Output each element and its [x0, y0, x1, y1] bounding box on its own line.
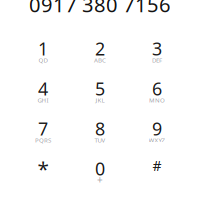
- staticText: QD: [38, 56, 47, 64]
- staticText: 3: [152, 36, 162, 61]
- staticText: PQRS: [35, 136, 51, 144]
- staticText: MNO: [149, 96, 165, 104]
- button[interactable]: 8: [71, 112, 128, 152]
- button[interactable]: 1: [14, 32, 71, 72]
- button[interactable]: 6: [128, 72, 185, 112]
- staticText: WXYZ: [148, 136, 165, 144]
- staticText: 5: [95, 76, 105, 101]
- staticText: ABC: [94, 56, 106, 64]
- staticText: +: [97, 173, 103, 186]
- button[interactable]: 7: [14, 112, 71, 152]
- staticText: 4: [38, 76, 48, 101]
- staticText: 2: [95, 36, 105, 61]
- staticText: DEF: [152, 56, 162, 64]
- button[interactable]: 9: [128, 112, 185, 152]
- staticText: #: [152, 156, 161, 175]
- staticText: 9: [152, 116, 162, 141]
- staticText: 8: [95, 116, 105, 141]
- staticText: 0917 380 7156: [29, 0, 171, 18]
- staticText: JKL: [95, 96, 104, 104]
- button[interactable]: 4: [14, 72, 71, 112]
- staticText: 1: [38, 36, 48, 61]
- staticText: 7: [38, 116, 48, 141]
- staticText: TUV: [94, 136, 105, 144]
- button[interactable]: 2: [71, 32, 128, 72]
- staticText: GHI: [37, 96, 48, 104]
- button[interactable]: *: [14, 152, 71, 192]
- button[interactable]: #: [128, 152, 185, 192]
- staticText: *: [37, 154, 48, 182]
- button[interactable]: 0: [71, 152, 128, 192]
- button[interactable]: 3: [128, 32, 185, 72]
- button[interactable]: 5: [71, 72, 128, 112]
- staticText: 0: [95, 156, 105, 181]
- staticText: 6: [152, 76, 162, 101]
